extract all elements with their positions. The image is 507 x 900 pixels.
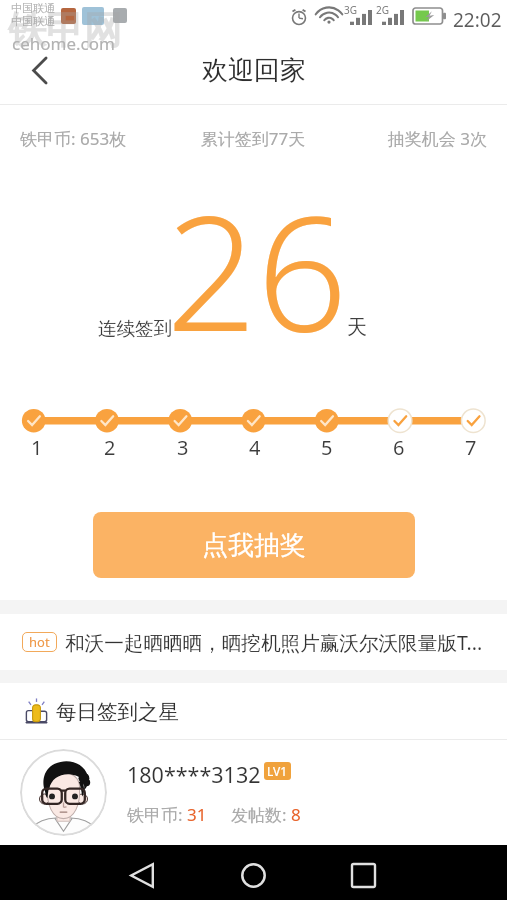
button[interactable]: Home (223, 848, 283, 900)
button[interactable]: 点我抽奖 (93, 512, 415, 578)
button[interactable]: Back (12, 42, 68, 98)
staticText: 铁甲币: 653枚 (20, 127, 175, 150)
staticText: 2G (376, 3, 389, 17)
staticText: 1 (31, 434, 43, 461)
staticText: 3 (177, 434, 189, 461)
staticText: 2 (104, 434, 116, 461)
staticText: 发帖数: (231, 803, 291, 826)
button[interactable]: 180****3132 (0, 740, 507, 845)
staticText: 铁甲币: (127, 803, 187, 826)
staticText: 4 (249, 434, 261, 461)
staticText: 和沃一起晒晒晒，晒挖机照片赢沃尔沃限量版T... (65, 629, 483, 656)
staticText: 欢迎回家 (202, 54, 306, 87)
staticText: 中国联通 (11, 14, 55, 28)
staticText: 每日签到之星 (56, 699, 179, 725)
staticText: 22:02 (453, 7, 502, 33)
staticText: 5 (321, 434, 333, 461)
button[interactable]: 每日签到之星 (0, 683, 507, 740)
staticText: cehome.com (12, 32, 115, 55)
staticText: 8 (291, 803, 301, 826)
staticText: 中国联通 (11, 1, 55, 15)
staticText: 31 (187, 803, 207, 826)
staticText: hot (29, 633, 50, 651)
staticText: 26 (166, 161, 348, 378)
button[interactable]: hot (0, 614, 507, 670)
staticText: 铁甲网 (8, 6, 122, 54)
staticText: 抽奖机会 3次 (331, 127, 487, 150)
staticText: 3G (344, 3, 357, 17)
staticText: 7 (465, 434, 477, 461)
staticText: 180****3132 (127, 760, 261, 789)
staticText: LV1 (267, 763, 288, 779)
staticText: 6 (393, 434, 405, 461)
staticText: 累计签到77天 (175, 127, 331, 150)
staticText: 连续签到 (98, 317, 172, 340)
staticText: 天 (347, 315, 367, 340)
staticText: 点我抽奖 (202, 529, 306, 562)
button[interactable]: Recents (333, 848, 393, 900)
button[interactable]: Back (112, 848, 172, 900)
